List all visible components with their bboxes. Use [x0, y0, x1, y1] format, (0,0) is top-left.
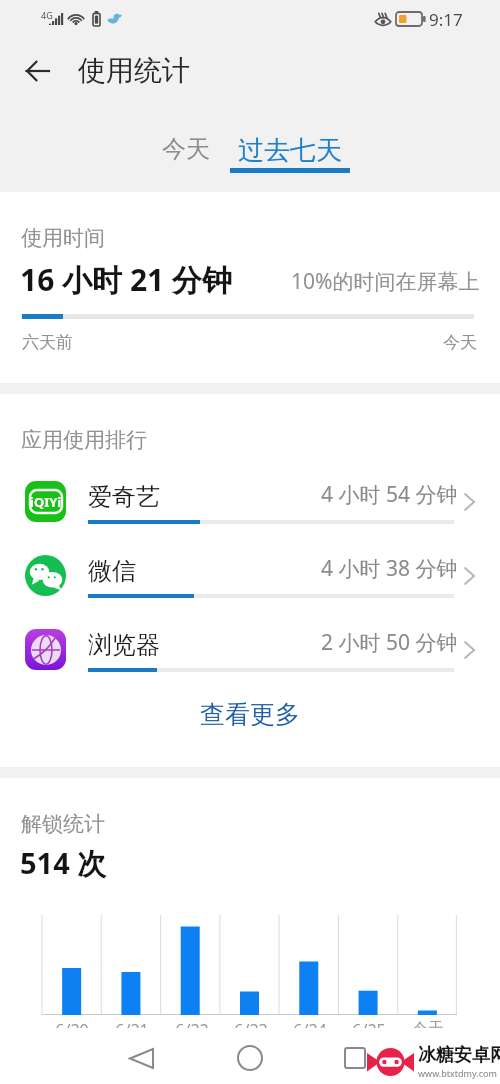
- staticText: 514 次: [20, 843, 107, 883]
- staticText: 查看更多: [200, 699, 300, 730]
- button[interactable]: Home: [225, 1033, 275, 1083]
- staticText: 6/24: [293, 1019, 327, 1041]
- staticText: 2 小时 50 分钟: [321, 628, 458, 657]
- button[interactable]: iQIYi: [0, 472, 500, 544]
- staticText: 6/21: [115, 1019, 149, 1041]
- staticText: 六天前: [22, 332, 73, 353]
- button[interactable]: Recents: [330, 1033, 380, 1083]
- staticText: 4G: [41, 9, 53, 21]
- staticText: 6/22: [175, 1019, 209, 1041]
- staticText: 今天: [443, 332, 477, 353]
- staticText: 微信: [88, 556, 136, 586]
- staticText: 使用时间: [21, 225, 105, 251]
- staticText: 今天: [162, 134, 210, 164]
- button[interactable]: 过去七天: [230, 120, 350, 176]
- staticText: iQIYi: [30, 493, 62, 511]
- staticText: 6/23: [234, 1019, 268, 1041]
- staticText: 今天: [412, 1019, 444, 1039]
- staticText: 解锁统计: [21, 811, 105, 837]
- button[interactable]: Back: [14, 48, 60, 94]
- button[interactable]: Back: [116, 1033, 166, 1083]
- staticText: 6/25: [352, 1019, 386, 1041]
- button[interactable]: 查看更多: [0, 686, 500, 742]
- staticText: 4 小时 38 分钟: [321, 554, 458, 583]
- staticText: 9:17: [429, 8, 463, 31]
- staticText: 冰糖安卓网: [418, 1044, 500, 1067]
- staticText: 过去七天: [238, 134, 342, 167]
- staticText: 10%的时间在屏幕上: [291, 267, 480, 296]
- staticText: 使用统计: [78, 53, 190, 88]
- staticText: 4 小时 54 分钟: [321, 480, 458, 509]
- staticText: 应用使用排行: [21, 427, 147, 453]
- button[interactable]: 今天: [142, 124, 230, 174]
- staticText: 16 小时 21 分钟: [20, 259, 233, 300]
- staticText: 爱奇艺: [88, 482, 160, 512]
- button[interactable]: 浏览器: [0, 620, 500, 692]
- staticText: 6/20: [55, 1019, 89, 1041]
- staticText: 浏览器: [88, 630, 160, 660]
- button[interactable]: 微信: [0, 546, 500, 618]
- staticText: www.btxtdmy.com: [418, 1067, 497, 1079]
